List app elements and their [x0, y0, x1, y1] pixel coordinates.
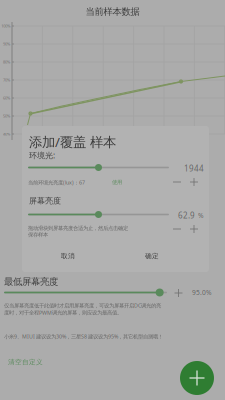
button[interactable]: Decrease: [172, 177, 182, 187]
staticText: 当前样本数据: [85, 6, 139, 17]
staticText: 环境光:: [29, 150, 55, 161]
staticText: 当前环境光亮度(lux)：67: [28, 179, 85, 186]
button[interactable]: Increase minimum brightness: [173, 288, 184, 298]
staticText: 拖动滑块到屏幕亮度合适为止，然后点击确定 保存样本: [28, 225, 128, 238]
button[interactable]: 使用: [109, 177, 125, 188]
staticText: 小米9、MIUI 建议设为30%，三星S8 建议设为95%，其它机型自测哦！: [4, 333, 163, 340]
staticText: 60%: [3, 95, 10, 101]
staticText: 取消: [61, 252, 75, 260]
staticText: 90%: [3, 41, 10, 47]
staticText: 1944: [184, 163, 204, 174]
button[interactable]: Add sample: [180, 361, 214, 395]
staticText: 使用: [112, 179, 122, 186]
staticText: 80%: [3, 59, 10, 65]
button[interactable]: 清空自定义: [1, 352, 50, 372]
button[interactable]: Increase: [189, 177, 199, 187]
staticText: 屏幕亮度: [29, 196, 61, 206]
staticText: %: [198, 211, 204, 220]
staticText: 仅当屏幕亮度低于此值时才启用屏幕亮度，可设为屏幕开启DC调光的亮 度时，对于全程…: [4, 302, 161, 316]
button[interactable]: Decrease: [172, 224, 182, 234]
staticText: 100%: [1, 23, 10, 29]
staticText: 确定: [145, 252, 159, 260]
button[interactable]: 确定: [137, 248, 167, 264]
staticText: 95.0%: [192, 288, 212, 297]
staticText: 62.9: [178, 210, 195, 221]
staticText: 最低屏幕亮度: [4, 276, 58, 287]
staticText: 70%: [3, 77, 10, 83]
staticText: 40%: [3, 131, 10, 137]
staticText: 50%: [3, 113, 10, 119]
staticText: 添加/覆盖 样本: [29, 133, 116, 151]
staticText: 清空自定义: [8, 358, 43, 366]
button[interactable]: Increase: [189, 224, 199, 234]
button[interactable]: 取消: [53, 248, 83, 264]
